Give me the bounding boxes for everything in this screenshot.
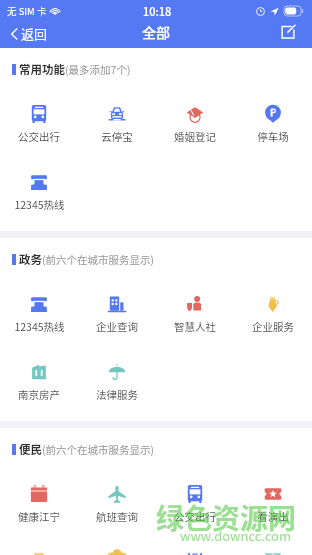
staticText: 无 SIM 卡 (7, 4, 47, 18)
button[interactable]: 编辑 (280, 24, 312, 40)
staticText: 停车场 (257, 129, 289, 144)
button[interactable]: 天气查询 (78, 553, 156, 555)
button[interactable]: 智慧人社 (156, 295, 234, 363)
button[interactable]: 停车场 (234, 105, 312, 173)
button[interactable]: 公交出行 (0, 105, 78, 173)
staticText: 12345热线 (14, 197, 65, 212)
staticText: (前六个在城市服务显示) (42, 442, 155, 457)
staticText: 企业服务 (252, 319, 294, 334)
button[interactable]: 婚姻登记 (156, 105, 234, 173)
button[interactable]: 云停宝 (78, 105, 156, 173)
staticText: 便民 (19, 441, 42, 458)
staticText: (前六个在城市服务显示) (42, 252, 155, 267)
staticText: 航班查询 (96, 509, 138, 524)
staticText: 婚姻登记 (174, 129, 216, 144)
staticText: 政务 (19, 251, 42, 268)
staticText: 法律服务 (96, 387, 138, 402)
button[interactable]: 南京房产 (0, 363, 78, 403)
staticText: 常用功能 (19, 61, 65, 78)
button[interactable]: 企业服务 (234, 295, 312, 363)
button[interactable]: 公交出行 (156, 485, 234, 553)
button[interactable]: 12345热线 (0, 295, 78, 363)
button[interactable]: 医院挂号 (234, 553, 312, 555)
staticText: 南京房产 (18, 387, 60, 402)
button[interactable]: 生活缴费 (0, 553, 78, 555)
button[interactable]: 返回 (0, 24, 56, 43)
staticText: 智慧人社 (174, 319, 216, 334)
staticText: 绿色资源网 (156, 497, 297, 538)
button[interactable]: 健康江宁 (0, 485, 78, 553)
staticText: www.downcc.com (180, 526, 292, 545)
staticText: (最多添加7个) (65, 62, 131, 77)
staticText: 健康江宁 (18, 509, 60, 524)
button[interactable]: 法律服务 (78, 363, 156, 403)
button[interactable]: 航班查询 (78, 485, 156, 553)
staticText: 公交出行 (174, 509, 216, 524)
staticText: 返回 (21, 24, 48, 43)
staticText: 12345热线 (14, 319, 65, 334)
staticText: 云停宝 (101, 129, 133, 144)
button[interactable]: 企业查询 (78, 295, 156, 363)
staticText: 10:18 (143, 3, 172, 19)
staticText: 企业查询 (96, 319, 138, 334)
staticText: 公交出行 (18, 129, 60, 144)
staticText: 看演出 (257, 509, 289, 524)
button[interactable]: 12345热线 (0, 173, 78, 213)
button[interactable]: 公交出行 (156, 553, 234, 555)
staticText: 全部 (142, 22, 170, 42)
button[interactable]: 看演出 (234, 485, 312, 553)
